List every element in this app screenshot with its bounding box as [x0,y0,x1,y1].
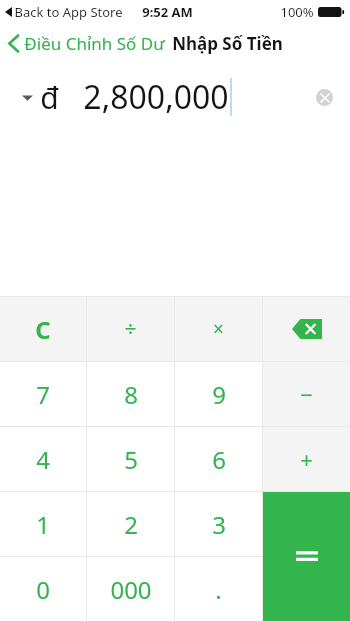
button[interactable]: Backspace [263,297,350,361]
button[interactable]: ÷ [87,297,174,361]
staticText: 0 [36,573,50,606]
staticText: đ [40,77,59,118]
staticText: ÷ [124,315,137,344]
button[interactable]: Điều Chỉnh Số Dư [8,32,283,55]
staticText: 9 [212,378,226,411]
button[interactable]: 9 [175,362,262,426]
button[interactable]: Back to App Store [5,3,123,21]
staticText: 2 [124,508,138,541]
staticText: C [35,313,51,346]
staticText: 100% [280,3,314,21]
button[interactable]: Clear amount [316,89,333,106]
staticText: Nhập Số Tiền [172,32,283,55]
staticText: + [300,444,313,474]
staticText: − [300,379,313,409]
staticText: 5 [124,443,138,476]
staticText: Điều Chỉnh Số Dư [24,32,165,55]
staticText: × [213,316,224,342]
staticText: 2,800,000 [83,75,229,119]
button[interactable]: 4 [0,427,86,491]
button[interactable]: Equals [263,492,350,621]
button[interactable]: × [175,297,262,361]
staticText: 9:52 AM [142,3,193,21]
button[interactable]: 7 [0,362,86,426]
staticText: 3 [212,508,226,541]
button[interactable]: 6 [175,427,262,491]
staticText: 1 [36,508,50,541]
staticText: 7 [36,378,50,411]
staticText: 6 [212,443,226,476]
button[interactable]: 5 [87,427,174,491]
staticText: . [215,573,222,606]
button[interactable]: 8 [87,362,174,426]
button[interactable]: 3 [175,492,262,556]
button[interactable]: 1 [0,492,86,556]
button[interactable]: + [263,427,350,491]
button[interactable]: đ [22,77,59,118]
staticText: 8 [124,378,138,411]
button[interactable]: − [263,362,350,426]
button[interactable]: 000 [87,557,174,621]
button[interactable]: 0 [0,557,86,621]
button[interactable]: 2 [87,492,174,556]
staticText: Back to App Store [14,3,123,21]
button[interactable]: C [0,297,86,361]
staticText: 000 [110,573,152,606]
staticText: 4 [36,443,50,476]
button[interactable]: . [175,557,262,621]
